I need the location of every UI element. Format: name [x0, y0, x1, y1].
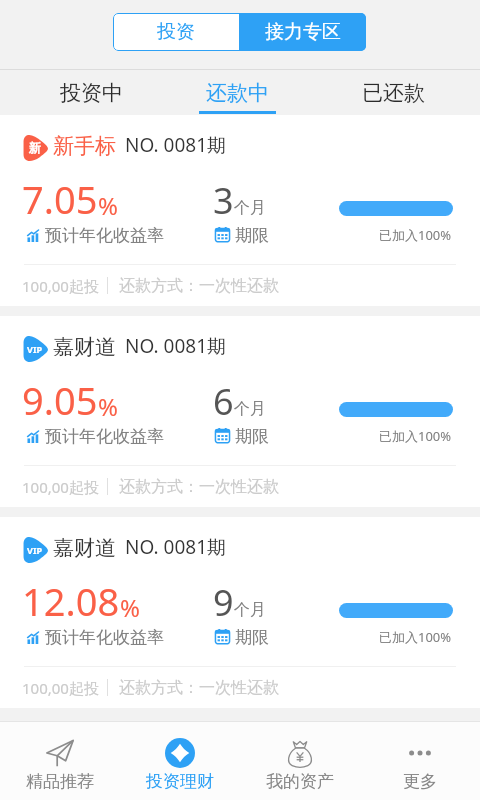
staticText: % — [98, 390, 118, 423]
button[interactable]: 更多 — [360, 722, 480, 800]
staticText: 更多 — [403, 771, 437, 792]
other: 更多 — [406, 739, 434, 767]
staticText: 期限 — [235, 627, 269, 648]
staticText: 个月 — [234, 399, 266, 419]
staticText: 还款方式：一次性还款 — [119, 276, 279, 296]
staticText: 3 — [213, 176, 234, 225]
staticText: 100,00起投 — [22, 477, 99, 497]
staticText: 还款方式：一次性还款 — [119, 477, 279, 497]
staticText: 9.05 — [22, 374, 98, 426]
staticText: 100,00起投 — [22, 276, 99, 296]
staticText: VIP — [27, 343, 42, 355]
button[interactable]: 精品推荐 — [0, 722, 120, 800]
staticText: 已还款 — [362, 80, 425, 106]
button[interactable]: 投资 — [113, 13, 239, 51]
staticText: 还款中 — [206, 80, 269, 106]
staticText: NO. 0081期 — [125, 333, 227, 359]
staticText: 新 — [29, 140, 41, 155]
staticText: 我的资产 — [266, 771, 334, 792]
staticText: 预计年化收益率 — [45, 426, 164, 447]
staticText: % — [98, 189, 118, 222]
button[interactable]: 投资理财 — [120, 722, 240, 800]
staticText: 已加入100% — [379, 628, 452, 646]
staticText: 接力专区 — [265, 20, 341, 44]
staticText: 投资中 — [60, 80, 123, 106]
button[interactable]: 接力专区 — [239, 13, 366, 51]
button[interactable]: 投资中 — [4, 70, 178, 115]
other: 投资理财 — [165, 738, 195, 768]
staticText: 嘉财道 — [53, 334, 116, 360]
button[interactable]: 我的资产 — [240, 722, 360, 800]
staticText: % — [120, 591, 140, 624]
other: 我的资产 — [286, 739, 314, 767]
staticText: 已加入100% — [379, 427, 452, 445]
other: 精品推荐 — [46, 739, 74, 767]
staticText: 嘉财道 — [53, 535, 116, 561]
staticText: NO. 0081期 — [125, 534, 227, 560]
staticText: 投资理财 — [146, 771, 214, 792]
staticText: 投资 — [157, 20, 195, 44]
staticText: 期限 — [235, 426, 269, 447]
staticText: 期限 — [235, 225, 269, 246]
staticText: 精品推荐 — [26, 771, 94, 792]
staticText: 9 — [213, 578, 234, 627]
button[interactable]: 已还款 — [303, 70, 480, 115]
staticText: NO. 0081期 — [125, 132, 227, 158]
staticText: 100,00起投 — [22, 678, 99, 698]
staticText: 个月 — [234, 198, 266, 218]
staticText: 6 — [213, 377, 234, 426]
staticText: VIP — [27, 544, 42, 556]
staticText: 还款方式：一次性还款 — [119, 678, 279, 698]
staticText: 已加入100% — [379, 226, 452, 244]
staticText: 7.05 — [22, 173, 98, 225]
staticText: 预计年化收益率 — [45, 225, 164, 246]
staticText: 个月 — [234, 600, 266, 620]
staticText: 新手标 — [53, 133, 116, 159]
staticText: 预计年化收益率 — [45, 627, 164, 648]
staticText: 12.08 — [22, 575, 120, 627]
button[interactable]: 还款中 — [174, 70, 300, 115]
